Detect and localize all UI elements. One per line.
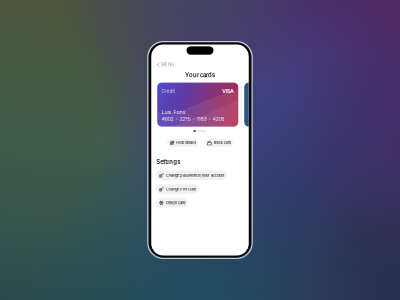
staticText: VISA <box>222 88 234 94</box>
staticText: Freeze card <box>166 200 185 205</box>
button[interactable]: Hide details <box>167 139 198 147</box>
button[interactable]: MENU <box>151 61 179 68</box>
staticText: Your cards <box>185 71 215 79</box>
button[interactable]: Freeze card <box>156 198 188 208</box>
button[interactable]: Change password to your account <box>156 170 227 180</box>
button[interactable]: Change PIN code <box>156 184 199 194</box>
staticText: Hide details <box>176 141 196 145</box>
staticText: MENU <box>161 62 174 67</box>
staticText: Luis Fonsi <box>161 109 186 115</box>
staticText: Settings <box>156 158 180 165</box>
button[interactable]: Block card <box>205 139 233 147</box>
staticText: Credit <box>161 88 174 94</box>
staticText: Change password to your account <box>166 173 224 178</box>
staticText: Block card <box>214 141 231 145</box>
staticText: Change PIN code <box>166 187 196 191</box>
staticText: 4602 - 2215 - 1183 - 4209 <box>161 116 224 122</box>
